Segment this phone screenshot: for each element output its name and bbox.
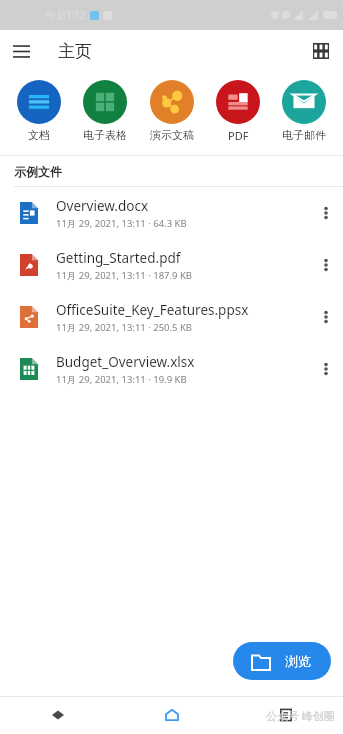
button[interactable]: 电子表格: [74, 78, 136, 144]
button[interactable]: More options: [309, 291, 343, 343]
button[interactable]: OfficeSuite_Key_Features.ppsx: [0, 291, 343, 343]
button[interactable]: Budget_Overview.xlsx: [0, 343, 343, 395]
staticText: 11月 29, 2021, 13:11 · 19.9 KB: [56, 373, 187, 386]
staticText: 电子邮件: [282, 128, 326, 142]
button[interactable]: 演示文稿: [141, 78, 203, 144]
staticText: 11月 29, 2021, 13:11 · 64.3 KB: [56, 217, 187, 230]
button[interactable]: 电子邮件: [273, 78, 335, 144]
button[interactable]: More options: [309, 239, 343, 291]
staticText: 公众号 峰创圈: [266, 708, 335, 723]
staticText: 演示文稿: [150, 128, 194, 142]
button[interactable]: Home: [115, 696, 229, 734]
staticText: Getting_Started.pdf: [56, 249, 181, 267]
button[interactable]: More options: [309, 187, 343, 239]
staticText: 示例文件: [14, 164, 62, 179]
staticText: 电子表格: [83, 128, 127, 142]
staticText: OfficeSuite_Key_Features.ppsx: [56, 301, 249, 319]
button[interactable]: Menu: [0, 30, 42, 72]
button[interactable]: Getting_Started.pdf: [0, 239, 343, 291]
button[interactable]: PDF: [207, 78, 269, 145]
staticText: 主页: [58, 41, 92, 62]
button[interactable]: 文档: [8, 78, 70, 144]
button[interactable]: Storage: [0, 696, 115, 734]
staticText: 浏览: [285, 653, 311, 669]
button[interactable]: 浏览: [233, 642, 331, 680]
staticText: 11月 29, 2021, 13:11 · 187.9 KB: [56, 269, 193, 282]
staticText: 11月 29, 2021, 13:11 · 250.5 KB: [56, 321, 193, 334]
staticText: PDF: [228, 128, 249, 143]
staticText: 文档: [28, 128, 50, 142]
button[interactable]: Grid view: [299, 30, 343, 72]
staticText: Overview.docx: [56, 197, 149, 215]
button[interactable]: Overview.docx: [0, 187, 343, 239]
staticText: 午后1:12: [46, 8, 86, 22]
button[interactable]: Documents: [229, 696, 343, 734]
button[interactable]: More options: [309, 343, 343, 395]
staticText: Budget_Overview.xlsx: [56, 353, 195, 371]
